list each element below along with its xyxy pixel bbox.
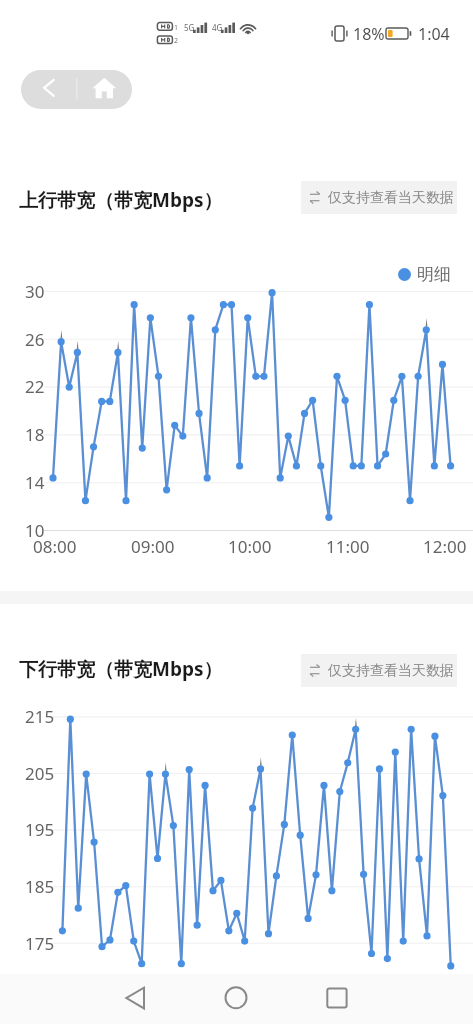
staticText: 上行带宽（带宽Mbps）	[19, 187, 223, 213]
staticText: 12:00	[423, 535, 467, 558]
staticText: 26	[25, 328, 45, 351]
staticText: 215	[25, 705, 55, 728]
staticText: 1	[174, 23, 179, 33]
staticText: 10	[25, 519, 45, 542]
staticText: 205	[25, 762, 55, 785]
button[interactable]: 仅支持查看当天数据	[301, 181, 457, 214]
staticText: 09:00	[131, 535, 175, 558]
staticText: 22	[25, 375, 45, 398]
staticText: 2	[174, 36, 179, 46]
staticText: 10:00	[228, 535, 272, 558]
button[interactable]: Back	[21, 70, 76, 109]
button[interactable]: Back	[105, 974, 165, 1024]
staticText: 11:00	[326, 535, 370, 558]
staticText: 明细	[417, 264, 451, 285]
staticText: 175	[25, 932, 55, 955]
button[interactable]: Recents	[307, 974, 367, 1024]
button[interactable]: Home	[76, 70, 132, 109]
staticText: 5G	[184, 22, 195, 33]
staticText: 18	[25, 423, 45, 446]
staticText: 185	[25, 875, 55, 898]
staticText: 195	[25, 818, 55, 841]
staticText: 18%	[353, 23, 385, 45]
staticText: 1:04	[418, 23, 450, 45]
staticText: 08:00	[33, 535, 77, 558]
button[interactable]: 明细	[398, 264, 445, 285]
staticText: 4G	[212, 22, 223, 33]
staticText: 仅支持查看当天数据	[328, 189, 454, 207]
button[interactable]: Home	[206, 974, 266, 1024]
staticText: 仅支持查看当天数据	[328, 662, 454, 680]
button[interactable]: 仅支持查看当天数据	[301, 654, 457, 687]
staticText: 下行带宽（带宽Mbps）	[19, 656, 223, 682]
staticText: 14	[25, 471, 45, 494]
staticText: 30	[25, 280, 45, 303]
